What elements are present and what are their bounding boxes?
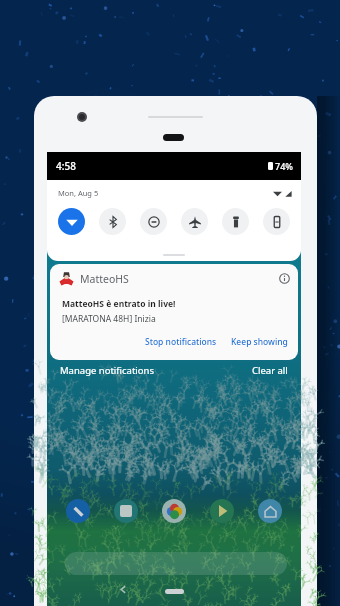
button[interactable]: Clear all	[252, 362, 288, 379]
button[interactable]: Auto rotate	[263, 208, 290, 235]
button[interactable]: Stop notifications	[140, 333, 222, 351]
button[interactable]: Back	[119, 585, 128, 594]
staticText: Manage notifications	[60, 364, 154, 377]
button[interactable]: Notification info	[279, 273, 290, 284]
button[interactable]: Keep showing	[226, 333, 293, 351]
staticText: [MARATONA 48H] Inizia	[62, 313, 156, 325]
button[interactable]: Do not disturb	[140, 208, 167, 235]
staticText: MatteoHS	[80, 272, 129, 286]
button[interactable]: Manage notifications	[60, 362, 154, 379]
button[interactable]: Photos	[162, 499, 186, 523]
button[interactable]: Google search	[65, 552, 287, 575]
button[interactable]: Wi-Fi	[58, 208, 85, 235]
staticText: 4:58	[56, 159, 76, 173]
staticText: Mon, Aug 5	[58, 188, 99, 198]
button[interactable]: MatteoHS	[50, 264, 298, 360]
button[interactable]: Flashlight	[222, 208, 249, 235]
button[interactable]: Play Store	[210, 499, 234, 523]
button[interactable]: Phone	[66, 499, 90, 523]
staticText: Stop notifications	[145, 336, 217, 348]
button[interactable]: Home	[165, 589, 184, 594]
staticText: Clear all	[252, 364, 288, 377]
button[interactable]: Home app	[258, 499, 282, 523]
button[interactable]: Messages	[114, 499, 138, 523]
staticText: MatteoHS è entrato in live!	[62, 298, 176, 310]
staticText: 74%	[275, 160, 293, 172]
button[interactable]: Airplane mode	[181, 208, 208, 235]
staticText: Keep showing	[231, 336, 288, 348]
button[interactable]: Bluetooth	[99, 208, 126, 235]
